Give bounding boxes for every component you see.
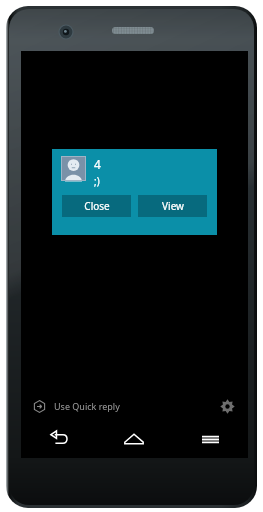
button[interactable]: Home — [96, 420, 172, 458]
button[interactable]: Settings — [216, 395, 238, 417]
button[interactable]: Back — [21, 420, 96, 458]
button[interactable]: Close — [62, 195, 131, 217]
button[interactable]: Use Quick reply — [21, 391, 248, 421]
button[interactable]: Recent apps — [172, 420, 248, 458]
staticText: View — [162, 199, 184, 213]
staticText: Close — [84, 199, 110, 213]
staticText: ;) — [94, 174, 100, 188]
staticText: Use Quick reply — [54, 400, 120, 412]
button[interactable]: View — [138, 195, 207, 217]
staticText: 4 — [94, 156, 101, 172]
